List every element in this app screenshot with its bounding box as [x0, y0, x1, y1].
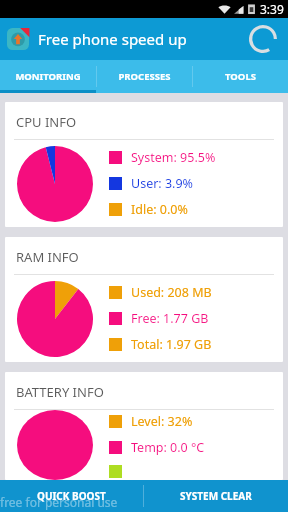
staticText: User: 3.9%: [131, 175, 193, 192]
staticText: Free phone speed up: [38, 29, 187, 49]
staticText: Free: 1.77 GB: [131, 310, 209, 327]
staticText: Used: 208 MB: [131, 284, 212, 301]
staticText: RAM INFO: [16, 248, 79, 266]
button[interactable]: CPU INFO: [5, 102, 283, 227]
staticText: System: 95.5%: [131, 149, 216, 166]
staticText: QUICK BOOST: [37, 489, 106, 503]
button[interactable]: TOOLS: [193, 60, 288, 93]
button[interactable]: RAM INFO: [5, 237, 283, 362]
button[interactable]: BATTERY INFO: [5, 372, 283, 480]
staticText: SYSTEM CLEAR: [180, 489, 252, 503]
staticText: TOOLS: [225, 70, 256, 83]
button[interactable]: QUICK BOOST: [0, 480, 143, 512]
button[interactable]: MONITORING: [0, 60, 96, 93]
staticText: Total: 1.97 GB: [131, 336, 212, 353]
button[interactable]: Scan progress: [246, 22, 280, 56]
button[interactable]: SYSTEM CLEAR: [144, 480, 288, 512]
staticText: BATTERY INFO: [16, 383, 104, 401]
staticText: 3:39: [260, 1, 284, 17]
staticText: MONITORING: [15, 70, 81, 83]
staticText: free for personal use: [0, 494, 118, 510]
staticText: PROCESSES: [118, 70, 171, 83]
staticText: CPU INFO: [16, 113, 77, 131]
staticText: Temp: 0.0 °C: [131, 439, 205, 456]
button[interactable]: PROCESSES: [97, 60, 192, 93]
staticText: Idle: 0.0%: [131, 201, 188, 218]
staticText: Level: 32%: [131, 413, 193, 430]
